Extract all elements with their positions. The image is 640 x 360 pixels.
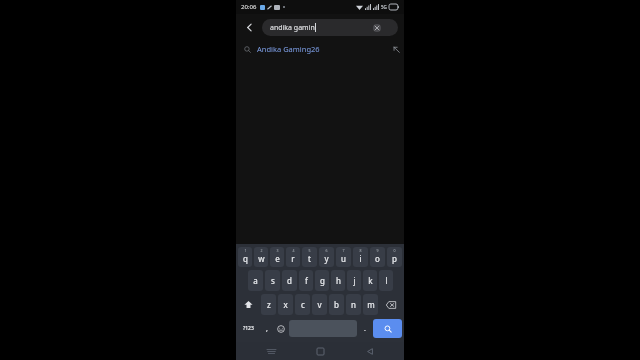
button[interactable]: a xyxy=(248,270,263,291)
staticText: c xyxy=(301,299,305,310)
button[interactable]: s xyxy=(265,270,280,291)
button[interactable]: Back xyxy=(355,342,385,360)
staticText: k xyxy=(368,275,373,286)
staticText: o xyxy=(375,253,380,264)
button[interactable]: Andika Gaming26 xyxy=(236,40,404,58)
staticText: 5 xyxy=(308,248,311,253)
staticText: i xyxy=(359,253,362,264)
staticText: 20:06 xyxy=(241,3,257,11)
staticText: x xyxy=(283,299,288,310)
staticText: 8 xyxy=(359,248,362,253)
button[interactable]: g xyxy=(315,270,329,291)
button[interactable]: 5 xyxy=(302,247,317,267)
staticText: a xyxy=(253,275,258,286)
staticText: t xyxy=(308,253,311,264)
staticText: s xyxy=(271,275,275,286)
staticText: g xyxy=(320,275,325,286)
staticText: 9 xyxy=(376,248,379,253)
button[interactable]: Search xyxy=(373,319,402,338)
button[interactable]: c xyxy=(295,294,310,315)
staticText: y xyxy=(324,253,329,264)
button[interactable]: l xyxy=(379,270,393,291)
button[interactable]: 6 xyxy=(319,247,334,267)
button[interactable]: v xyxy=(312,294,327,315)
staticText: q xyxy=(243,253,248,264)
staticText: 1 xyxy=(244,248,247,253)
button[interactable]: Home xyxy=(305,342,335,360)
button[interactable]: d xyxy=(282,270,297,291)
staticText: d xyxy=(287,275,292,286)
staticText: m xyxy=(367,299,375,310)
button[interactable]: 3 xyxy=(270,247,284,267)
button[interactable]: j xyxy=(347,270,361,291)
button[interactable]: . xyxy=(359,318,371,339)
button[interactable]: andika gamin xyxy=(262,19,398,36)
button[interactable]: 4 xyxy=(286,247,300,267)
staticText: 2 xyxy=(260,248,263,253)
staticText: 7 xyxy=(342,248,345,253)
staticText: u xyxy=(341,253,346,264)
button[interactable]: 2 xyxy=(254,247,268,267)
button[interactable]: Clear xyxy=(373,24,381,32)
staticText: e xyxy=(275,253,280,264)
button[interactable]: ?123 xyxy=(238,318,259,339)
staticText: , xyxy=(266,324,268,334)
button[interactable]: h xyxy=(331,270,345,291)
button[interactable]: 9 xyxy=(370,247,385,267)
staticText: 4 xyxy=(292,248,295,253)
button[interactable]: Emoji xyxy=(274,318,287,339)
button[interactable]: 8 xyxy=(353,247,368,267)
staticText: b xyxy=(334,299,339,310)
button[interactable]: Shift xyxy=(238,294,259,315)
button[interactable]: 0 xyxy=(387,247,402,267)
staticText: h xyxy=(336,275,341,286)
button[interactable]: Backspace xyxy=(380,294,402,315)
button[interactable]: m xyxy=(363,294,378,315)
staticText: 6 xyxy=(325,248,328,253)
button[interactable]: Recents xyxy=(256,342,286,360)
button[interactable]: Insert suggestion xyxy=(388,41,404,57)
staticText: ?123 xyxy=(243,325,254,332)
staticText: w xyxy=(258,253,265,264)
button[interactable]: x xyxy=(278,294,293,315)
button[interactable]: Back xyxy=(236,14,262,40)
button[interactable]: z xyxy=(261,294,276,315)
staticText: 0 xyxy=(393,248,396,253)
staticText: p xyxy=(392,253,397,264)
staticText: v xyxy=(317,299,322,310)
button[interactable]: k xyxy=(363,270,377,291)
button[interactable]: 1 xyxy=(238,247,252,267)
staticText: j xyxy=(353,275,356,286)
staticText: l xyxy=(385,275,388,286)
button[interactable]: f xyxy=(299,270,313,291)
button[interactable]: b xyxy=(329,294,344,315)
button[interactable]: , xyxy=(261,318,272,339)
staticText: andika gamin xyxy=(270,23,315,33)
staticText: 5G xyxy=(381,4,387,10)
staticText: Andika Gaming26 xyxy=(257,44,320,54)
staticText: . xyxy=(364,324,366,334)
staticText: 3 xyxy=(276,248,279,253)
button[interactable]: 7 xyxy=(336,247,351,267)
staticText: f xyxy=(305,275,308,286)
staticText: r xyxy=(291,253,295,264)
button[interactable]: n xyxy=(346,294,361,315)
staticText: n xyxy=(351,299,356,310)
staticText: z xyxy=(267,299,271,310)
